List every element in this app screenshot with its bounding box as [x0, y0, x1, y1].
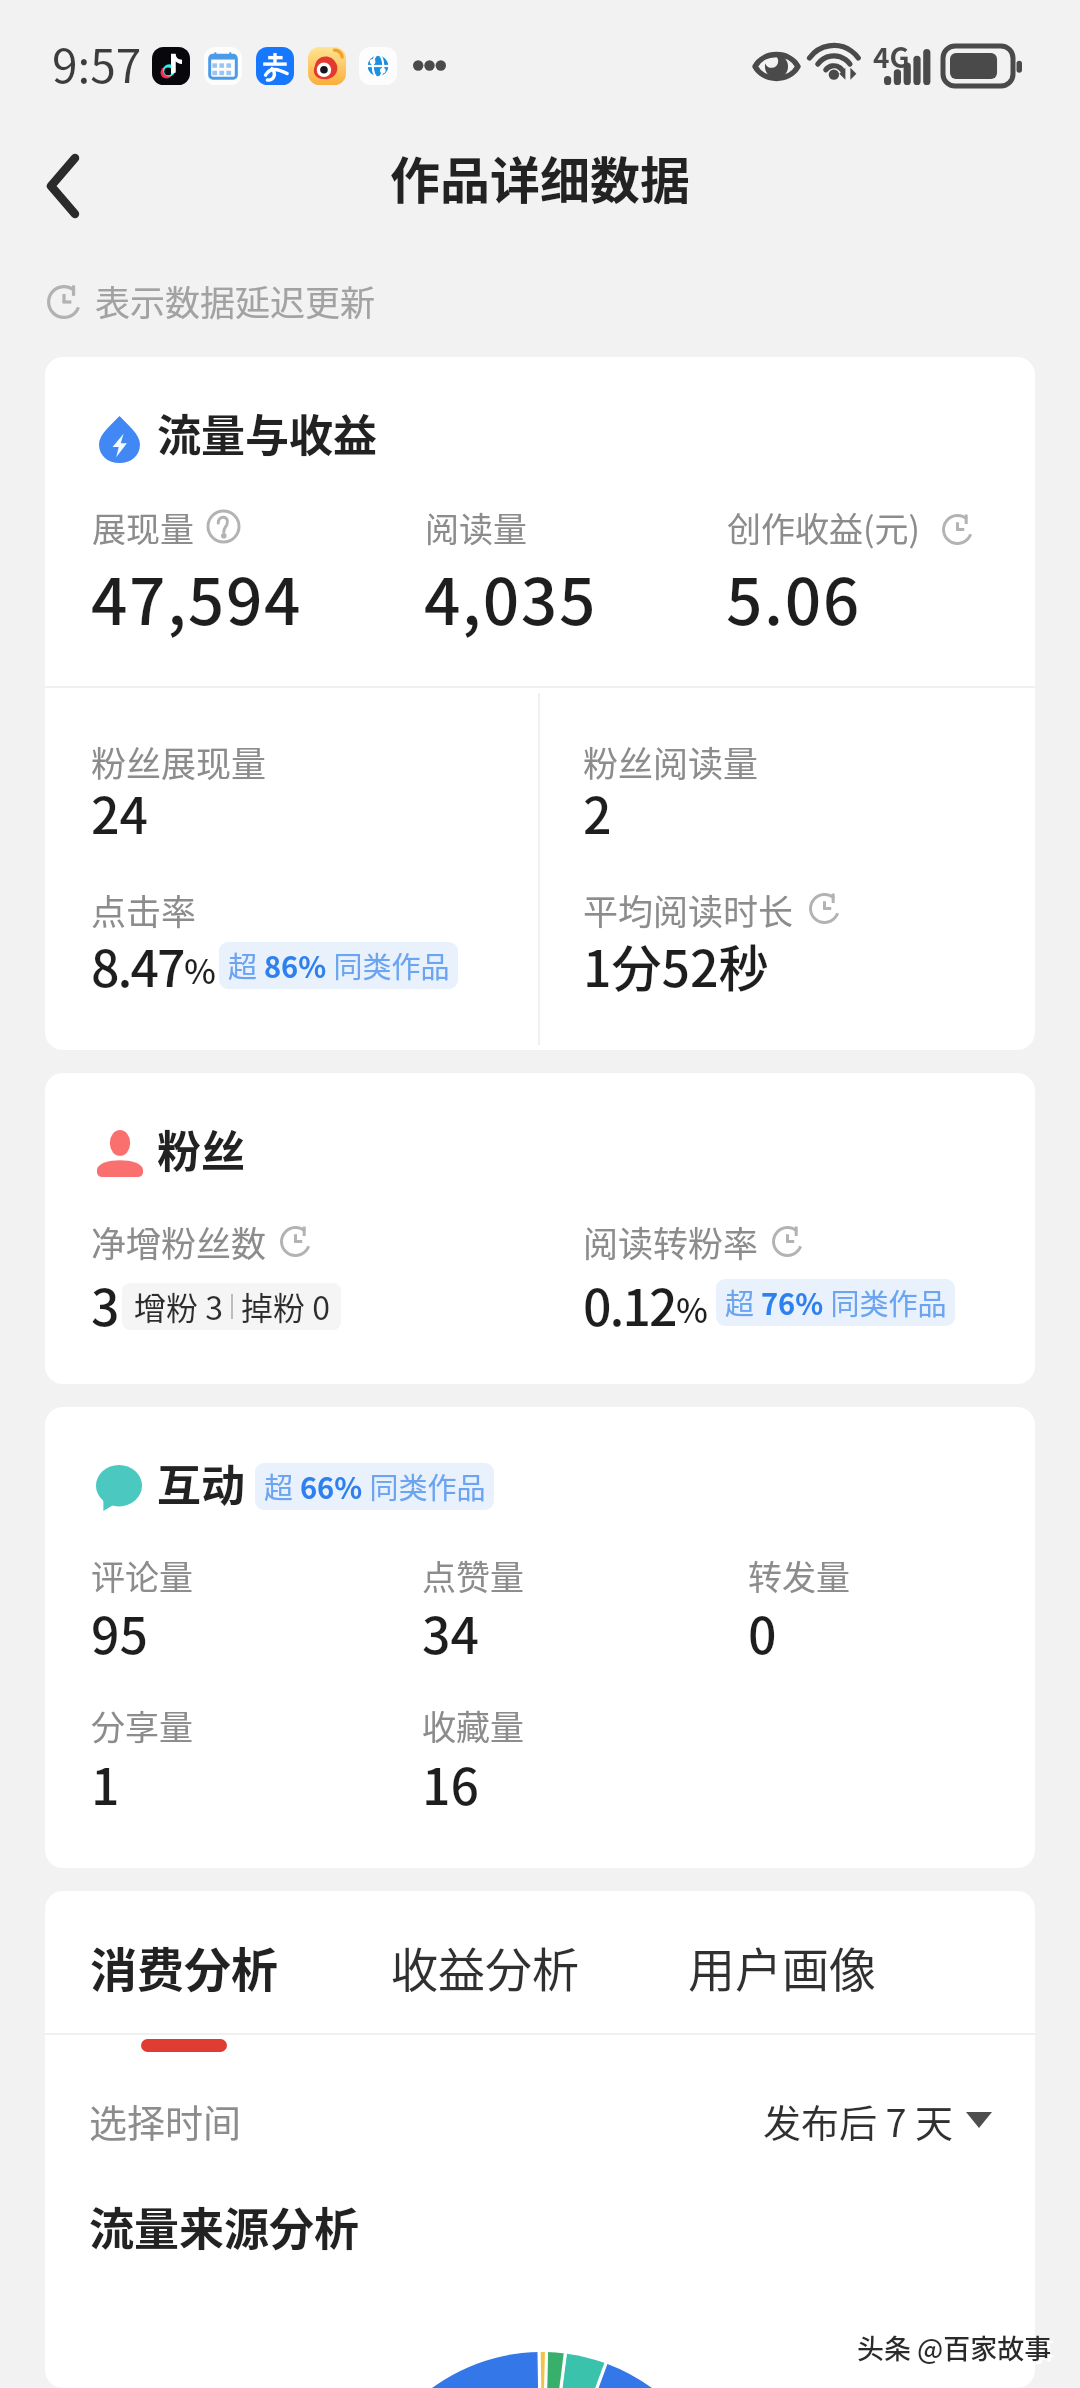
staticText: 粉丝阅读量: [583, 736, 759, 787]
staticText: 收藏量: [422, 1701, 524, 1750]
staticText: 5.06: [726, 551, 861, 644]
staticText: 点赞量: [422, 1551, 524, 1600]
staticText: 发布后 7 天: [763, 2093, 954, 2148]
staticText: 47,594: [91, 551, 303, 644]
staticText: 34: [422, 1596, 479, 1668]
staticText: 95: [91, 1596, 148, 1668]
staticText: 粉丝: [157, 1117, 245, 1181]
staticText: 0.12: [583, 1268, 676, 1340]
staticText: 展现量: [92, 503, 194, 552]
staticText: 76%: [761, 1281, 824, 1323]
staticText: 4G: [873, 36, 910, 77]
staticText: 流量与收益: [157, 401, 377, 465]
staticText: %: [184, 945, 216, 994]
staticText: 超: [264, 1465, 300, 1507]
staticText: 平均阅读时长: [583, 884, 794, 935]
staticText: 净增粉丝数: [91, 1216, 267, 1267]
staticText: 86%: [264, 944, 327, 986]
staticText: 流量来源分析: [89, 2194, 360, 2259]
staticText: 点击率: [91, 884, 197, 935]
staticText: 24: [91, 776, 148, 848]
staticText: 9:57: [52, 30, 142, 97]
staticText: 增粉 3: [134, 1283, 223, 1329]
staticText: 0: [748, 1596, 777, 1668]
staticText: 消费分析: [90, 1932, 278, 2000]
staticText: 创作收益(元): [727, 503, 920, 552]
staticText: 转发量: [748, 1551, 850, 1600]
staticText: 超: [228, 944, 264, 986]
staticText: 16: [422, 1747, 479, 1819]
staticText: 8.47: [91, 929, 184, 1001]
staticText: 互动: [157, 1451, 245, 1515]
staticText: 同类作品: [363, 1465, 486, 1507]
staticText: 同类作品: [824, 1281, 947, 1323]
staticText: 粉丝展现量: [91, 736, 267, 787]
staticText: 作品详细数据: [390, 141, 690, 213]
staticText: 收益分析: [391, 1932, 579, 2000]
staticText: 66%: [300, 1465, 363, 1507]
staticText: 4,035: [424, 551, 597, 644]
staticText: 2: [583, 776, 612, 848]
staticText: 头条 @百家故事: [860, 2331, 1055, 2370]
staticText: 3: [91, 1268, 120, 1340]
staticText: 分享量: [91, 1701, 193, 1750]
staticText: 用户画像: [688, 1932, 876, 2000]
staticText: 阅读量: [425, 503, 527, 552]
staticText: 评论量: [91, 1551, 193, 1600]
button[interactable]: Back: [16, 141, 110, 231]
staticText: %: [676, 1284, 708, 1333]
staticText: 1分52秒: [583, 929, 769, 1001]
staticText: 同类作品: [327, 944, 450, 986]
staticText: 选择时间: [89, 2093, 242, 2148]
staticText: 1: [91, 1747, 120, 1819]
staticText: 头条 @百家故事: [857, 2328, 1052, 2367]
staticText: 阅读转粉率: [583, 1216, 759, 1267]
staticText: 超: [725, 1281, 761, 1323]
staticText: 掉粉 0: [241, 1283, 330, 1329]
staticText: 表示数据延迟更新: [95, 275, 376, 326]
